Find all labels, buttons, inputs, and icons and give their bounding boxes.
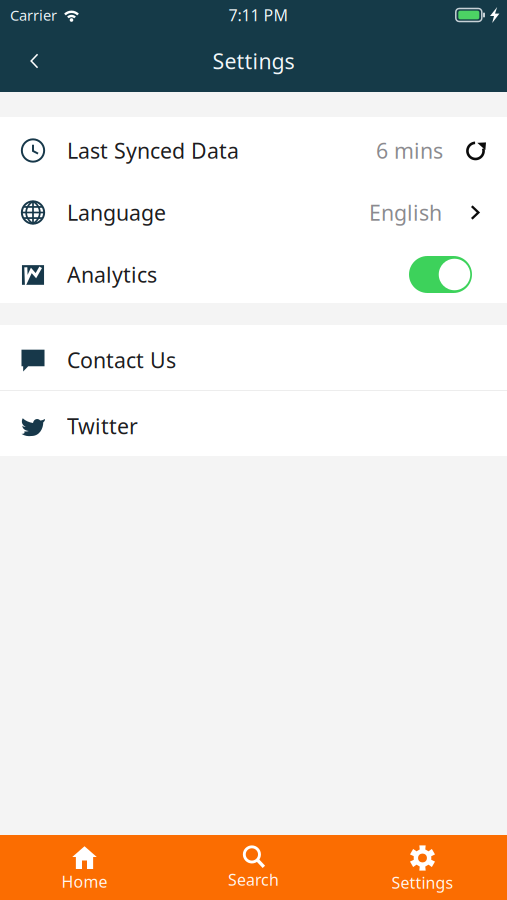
staticText: English [369,198,442,227]
staticText: Search [228,869,279,890]
button[interactable]: Home [0,835,169,900]
staticText: Analytics [67,260,157,289]
staticText: Contact Us [67,346,176,374]
staticText: Home [61,871,107,892]
button[interactable]: Language [0,179,507,241]
staticText: Settings [391,872,453,893]
staticText: Twitter [67,412,138,440]
staticText: Carrier [10,5,57,25]
button[interactable]: Analytics [0,241,507,303]
button[interactable]: Search [169,835,338,900]
staticText: Settings [212,47,294,75]
button[interactable]: Twitter [0,391,507,456]
button[interactable]: Settings [338,835,507,900]
button[interactable]: Contact Us [0,325,507,390]
staticText: Language [67,198,166,227]
button[interactable]: Back [0,37,59,85]
staticText: Last Synced Data [67,136,239,165]
button[interactable]: Last Synced Data [0,117,507,179]
staticText: 6 mins [376,136,443,165]
staticText: 7:11 PM [228,4,288,26]
